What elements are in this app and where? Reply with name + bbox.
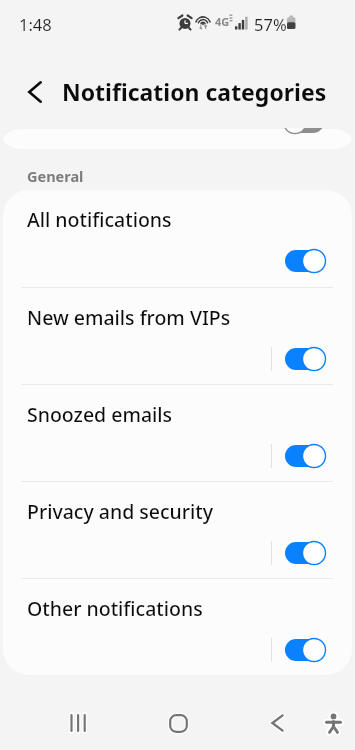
- staticText: Snoozed emails: [27, 401, 173, 428]
- button[interactable]: Back: [16, 70, 54, 114]
- staticText: All notifications: [27, 206, 172, 233]
- staticText: Other notifications: [27, 595, 203, 622]
- button[interactable]: New emails from VIPs: [3, 288, 352, 385]
- staticText: General: [27, 166, 84, 186]
- button[interactable]: Back: [237, 693, 317, 750]
- button[interactable]: [0, 128, 355, 150]
- staticText: New emails from VIPs: [27, 304, 231, 331]
- button[interactable]: Accessibility: [293, 693, 355, 750]
- button[interactable]: Home: [138, 693, 218, 750]
- button[interactable]: Recents: [38, 693, 118, 750]
- staticText: 57%: [254, 13, 287, 35]
- button[interactable]: Other notifications: [3, 579, 352, 675]
- button[interactable]: Snoozed emails: [3, 385, 352, 482]
- button[interactable]: Privacy and security: [3, 482, 352, 579]
- staticText: 4G: [215, 14, 230, 29]
- staticText: Privacy and security: [27, 498, 214, 525]
- staticText: 1:48: [19, 13, 52, 35]
- button[interactable]: All notifications: [3, 190, 352, 288]
- staticText: Notification categories: [62, 76, 327, 107]
